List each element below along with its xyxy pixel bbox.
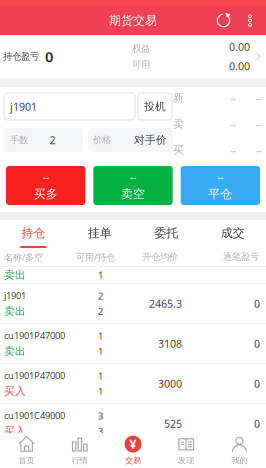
staticText: -- [217, 169, 223, 184]
button[interactable]: 投机 [138, 93, 172, 120]
staticText: 名称/多空 [4, 251, 43, 263]
button[interactable]: 价格 [88, 128, 173, 152]
staticText: 发现 [178, 456, 194, 465]
staticText: -- [230, 143, 236, 157]
staticText: 买入 [4, 385, 26, 398]
staticText: 持仓盈亏 [3, 51, 39, 62]
staticText: 2 [98, 305, 103, 317]
button[interactable]: 更多 [231, 13, 256, 28]
staticText: 1 [98, 385, 103, 397]
button[interactable]: 行情 [53, 433, 106, 468]
staticText: 卖 [173, 117, 184, 130]
staticText: 0 [254, 376, 260, 391]
staticText: 开仓均价 [142, 251, 178, 263]
staticText: 可用 [132, 59, 150, 70]
staticText: 0.00 [229, 40, 250, 54]
staticText: 首页 [19, 456, 35, 465]
staticText: 行情 [72, 456, 88, 465]
button[interactable]: 卖出 [0, 267, 266, 283]
button[interactable]: 持仓 [0, 220, 66, 248]
staticText: cu1901P47000 [4, 369, 65, 382]
button[interactable]: 持仓盈亏 [0, 35, 266, 78]
staticText: 3108 [158, 336, 182, 351]
staticText: 1 [98, 330, 103, 342]
button[interactable]: j1901 [0, 284, 266, 323]
staticText: 525 [164, 416, 182, 431]
staticText: 买多 [34, 187, 58, 201]
button[interactable]: cu1901P47000 [0, 324, 266, 363]
staticText: 1 [98, 345, 103, 357]
staticText: 交易 [125, 456, 141, 465]
staticText: 逐笔盈亏 [223, 251, 259, 263]
staticText: -- [130, 169, 136, 184]
button[interactable]: 发现 [160, 433, 213, 468]
staticText: -- [230, 91, 236, 105]
staticText: 3 [98, 425, 103, 437]
staticText: 委托 [154, 226, 178, 240]
staticText: 2 [98, 290, 103, 302]
staticText: 卖出 [4, 305, 26, 318]
button[interactable]: -- [6, 166, 85, 205]
staticText: 3000 [158, 376, 182, 391]
staticText: cu1901P47000 [4, 329, 65, 342]
staticText: -- [255, 143, 261, 157]
staticText: -- [230, 117, 236, 131]
staticText: j1901 [10, 99, 37, 114]
staticText: 持仓 [21, 226, 45, 240]
staticText: 对手价 [134, 133, 167, 146]
staticText: -- [43, 169, 49, 184]
button[interactable]: 委托 [133, 220, 199, 248]
button[interactable]: -- [93, 166, 173, 205]
staticText: 1 [98, 370, 103, 382]
staticText: 成交 [221, 226, 245, 240]
staticText: 可用/持仓 [76, 251, 115, 263]
button[interactable]: 首页 [0, 433, 53, 468]
staticText: 期货交易 [109, 13, 157, 28]
staticText: 权益 [132, 42, 150, 54]
button[interactable]: cu1901C49000 [0, 404, 266, 443]
staticText: 卖出 [4, 345, 26, 358]
button[interactable]: 挂单 [66, 220, 133, 248]
staticText: 卖出 [4, 268, 26, 281]
staticText: 买入 [4, 425, 26, 438]
staticText: 1 [98, 269, 103, 281]
staticText: 0 [45, 47, 53, 66]
button[interactable]: 刷新 [216, 13, 231, 28]
staticText: 0 [254, 416, 260, 431]
staticText: j1901 [4, 289, 26, 302]
staticText: ¥ [129, 436, 136, 452]
staticText: 卖空 [121, 187, 145, 201]
staticText: 投机 [144, 100, 166, 113]
staticText: cu1901C49000 [4, 409, 65, 422]
staticText: 新 [173, 91, 184, 104]
button[interactable]: ¥ [106, 433, 160, 468]
staticText: 平仓 [208, 187, 232, 201]
staticText: -- [255, 91, 261, 105]
button[interactable]: -- [181, 166, 260, 205]
button[interactable]: 成交 [199, 220, 266, 248]
staticText: 我的 [231, 456, 247, 465]
staticText: -- [255, 117, 261, 131]
staticText: 2465.3 [149, 296, 182, 311]
button[interactable]: cu1901P47000 [0, 364, 266, 403]
staticText: 0 [254, 336, 260, 351]
staticText: 手数 [10, 134, 28, 146]
staticText: 3 [98, 410, 103, 422]
staticText: 2 [49, 133, 55, 147]
staticText: 价格 [93, 134, 111, 146]
staticText: 0.00 [229, 59, 250, 73]
button[interactable]: 我的 [213, 433, 266, 468]
staticText: 0 [254, 296, 260, 311]
staticText: 买 [173, 143, 184, 156]
staticText: 挂单 [88, 226, 112, 240]
